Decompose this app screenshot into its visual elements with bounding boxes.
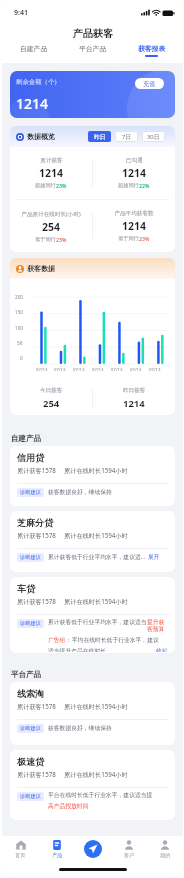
staticText: 获客报表 [138,44,166,53]
staticText: 线索淘 [17,688,44,699]
staticText: 超越同行 [118,182,139,189]
staticText: 超越同行 [35,182,56,189]
button[interactable]: 芝麻分贷 [10,511,175,572]
staticText: 1214 [122,219,147,233]
staticText: 数据概览 [27,132,55,141]
staticText: 我的 [160,852,171,859]
staticText: 23% [56,182,67,189]
staticText: 自建产品 [11,434,41,443]
staticText: 200 [15,294,23,300]
staticText: 充值 [143,80,156,88]
staticText: 平台在线时长低于行业水平，建议适当提 [48,791,153,798]
staticText: 适当提升产品在线时长 [48,647,106,652]
staticText: 07/13 [73,366,85,372]
staticText: ：平均在线时长低于行业水平，建议 [66,636,159,643]
staticText: 07/13 [130,366,142,372]
staticText: 产品获客 [73,27,113,40]
staticText: 30日 [147,133,160,141]
staticText: 低于同行 [35,236,56,243]
staticText: 254 [42,220,61,234]
staticText: 广告组 [48,636,66,643]
button[interactable]: 信用贷 [10,446,175,506]
button[interactable]: 获客报表 [122,43,181,63]
button[interactable]: 充值 [135,78,164,89]
staticText: 1214 [123,397,145,410]
staticText: 信用贷 [17,452,44,463]
staticText: 自建产品 [20,44,48,53]
button[interactable]: 7日 [115,131,138,142]
button[interactable]: 产品 [39,836,75,862]
staticText: 07/13 [36,366,48,372]
staticText: 首页 [15,852,26,859]
staticText: 高产品投放时间 [48,802,89,809]
staticText: 累计获客低于行业平均水平，建议适当 [48,618,147,625]
button[interactable]: 车贷 [10,577,175,653]
button[interactable]: 发布 [84,840,102,858]
button[interactable]: 线索淘 [10,682,175,745]
staticText: 累计在线时长1594小时 [64,597,128,605]
staticText: 提升获客预算 [147,618,168,632]
staticText: 芝麻分贷 [17,517,53,528]
staticText: 获客数据良好，继续保持 [48,488,112,495]
staticText: 今日获客 [40,387,63,394]
staticText: 累计获客1578 [17,770,56,778]
staticText: 254 [43,397,60,410]
staticText: 1214 [122,166,147,180]
staticText: 低于同行 [118,235,139,242]
staticText: 07/13 [149,366,161,372]
staticText: 累计获客 [40,157,63,164]
staticText: 平台产品 [79,44,107,53]
staticText: 诊断建议 [20,725,41,732]
staticText: 剩余金额（个） [16,78,61,86]
staticText: 07/13 [54,366,66,372]
staticText: 50 [17,340,23,346]
staticText: 累计获客低于行业平均水平，建议适... [48,553,146,561]
staticText: 07/13 [111,366,123,372]
staticText: 产品平均获客数 [114,210,154,217]
button[interactable]: 客户 [111,836,147,862]
staticText: 客户 [124,852,135,859]
button[interactable]: 昨日 [88,131,111,142]
button[interactable]: 30日 [142,131,165,142]
staticText: 累计获客1578 [17,466,56,474]
staticText: 昨日获客 [123,387,146,394]
staticText: 累计在线时长1594小时 [64,466,128,474]
staticText: 昨日 [94,133,106,140]
staticText: 7日 [122,133,132,141]
staticText: 平台产品 [11,670,41,679]
staticText: 诊断建议 [20,489,41,496]
staticText: 累计在线时长1594小时 [64,702,128,710]
staticText: 22% [139,182,150,189]
staticText: 0 [20,355,23,361]
staticText: 累计获客1578 [17,597,56,605]
staticText: 诊断建议 [20,793,41,800]
staticText: 获客数据良好，继续保持 [48,724,112,731]
staticText: 车贷 [17,583,35,594]
button[interactable]: 收起 [156,647,168,652]
button[interactable]: 首页 [2,836,39,862]
staticText: 累计获客1578 [17,702,56,710]
button[interactable]: 自建产品 [4,43,63,63]
staticText: 诊断建议 [20,554,41,561]
staticText: 累计获客1578 [17,531,56,539]
staticText: 获客数据 [27,264,55,273]
staticText: 1214 [39,166,64,180]
staticText: 1214 [16,94,49,113]
staticText: 产品累计在线时长(小时) [21,210,81,218]
staticText: 极速贷 [17,756,44,767]
staticText: 产品 [52,852,63,859]
button[interactable]: 展开 [148,553,160,560]
staticText: 150 [15,309,23,315]
staticText: 9:41 [14,8,28,18]
button[interactable]: 平台产品 [63,43,122,63]
button[interactable]: 我的 [147,836,183,862]
staticText: 诊断建议 [20,620,41,627]
staticText: 累计在线时长1594小时 [64,531,128,539]
button[interactable]: 极速贷 [10,750,175,820]
staticText: 23% [56,236,67,243]
staticText: 已勾通 [126,157,143,164]
staticText: 07/13 [92,366,104,372]
staticText: 100 [15,325,23,331]
staticText: 23% [139,235,150,242]
staticText: 累计在线时长1594小时 [64,770,128,778]
